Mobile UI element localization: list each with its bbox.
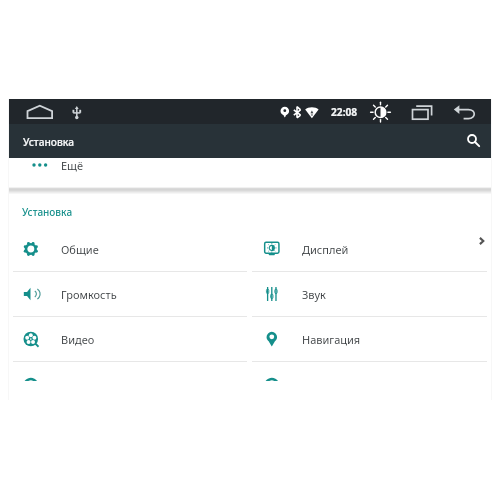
button[interactable]: Видео: [9, 317, 250, 361]
button[interactable]: Общие: [9, 227, 250, 271]
staticText: Ещё: [61, 158, 84, 173]
staticText: Установка: [23, 135, 75, 149]
button[interactable]: Дисплей: [250, 227, 491, 271]
button[interactable]: Громкость: [9, 272, 250, 316]
staticText: Видео: [61, 332, 95, 347]
button[interactable]: Навигация: [250, 317, 491, 361]
staticText: Громкость: [61, 287, 117, 302]
staticText: Звук: [302, 287, 326, 302]
staticText: Общие: [61, 242, 99, 257]
button[interactable]: Expand: [467, 227, 491, 251]
staticText: 22:08: [331, 105, 358, 119]
staticText: Установка: [22, 205, 73, 219]
button[interactable]: Search: [454, 124, 491, 158]
button[interactable]: [9, 362, 491, 381]
staticText: Навигация: [302, 332, 361, 347]
staticText: Дисплей: [302, 242, 349, 257]
button[interactable]: Ещё: [9, 158, 491, 187]
button[interactable]: Звук: [250, 272, 491, 316]
